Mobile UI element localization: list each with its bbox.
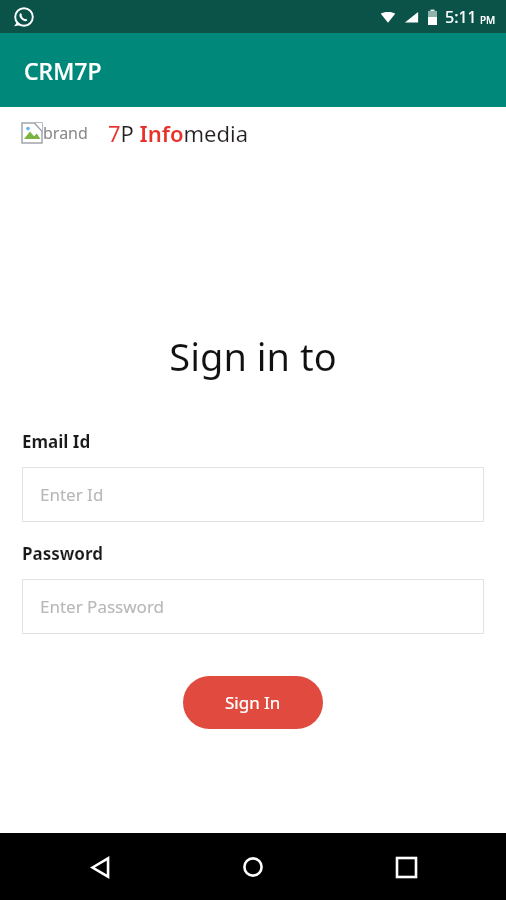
button[interactable]: Enter Password	[22, 579, 484, 634]
staticText: Sign in to	[0, 330, 506, 382]
staticText: PM	[480, 13, 496, 27]
button[interactable]: Recent apps	[382, 843, 430, 891]
staticText: brand	[43, 122, 88, 144]
staticText: Password	[22, 542, 103, 565]
button[interactable]: Home	[229, 843, 277, 891]
staticText: 7P Infomedia	[108, 118, 249, 148]
button[interactable]: Enter Id	[22, 467, 484, 522]
staticText: Email Id	[22, 430, 91, 453]
staticText: Enter Id	[40, 483, 104, 506]
staticText: Sign In	[225, 691, 281, 714]
button[interactable]: Back	[76, 843, 124, 891]
staticText: 5:11	[445, 6, 477, 28]
staticText: CRM7P	[24, 55, 102, 86]
staticText: Enter Password	[40, 595, 165, 618]
button[interactable]: Sign In	[183, 676, 323, 729]
